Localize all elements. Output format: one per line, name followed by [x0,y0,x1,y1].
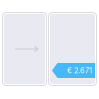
staticText: € 2.671 [67,66,92,75]
button[interactable]: Amount 2,671 euro [48,12,96,85]
button[interactable]: Continue [2,12,46,85]
